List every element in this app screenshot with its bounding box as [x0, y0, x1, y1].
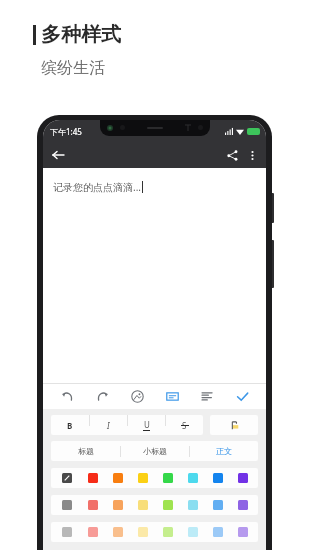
button[interactable]: Colour 2: [80, 522, 105, 542]
button[interactable]: U: [128, 415, 165, 435]
button[interactable]: Colour 1: [54, 468, 80, 488]
button[interactable]: Colour 2: [80, 468, 105, 488]
button[interactable]: Align: [190, 383, 225, 409]
button[interactable]: I: [90, 415, 127, 435]
button[interactable]: Colour 4: [130, 522, 155, 542]
staticText: 正文: [216, 446, 232, 456]
button[interactable]: S: [166, 415, 203, 435]
button[interactable]: Colour 8: [230, 495, 255, 515]
button[interactable]: Colour 3: [105, 522, 130, 542]
button[interactable]: Colour 4: [130, 468, 155, 488]
button[interactable]: Colour 3: [105, 468, 130, 488]
staticText: U: [144, 419, 150, 430]
button[interactable]: Colour 7: [205, 522, 230, 542]
button[interactable]: Colour 6: [180, 522, 205, 542]
staticText: 记录您的点点滴滴...: [53, 180, 142, 194]
staticText: S: [182, 420, 187, 431]
button[interactable]: Insert image: [120, 383, 155, 409]
button[interactable]: Colour 6: [180, 468, 205, 488]
staticText: 缤纷生活: [41, 58, 105, 78]
button[interactable]: Colour 8: [230, 522, 255, 542]
button[interactable]: Colour 7: [205, 468, 230, 488]
button[interactable]: Done: [225, 383, 260, 409]
button[interactable]: Text format: [155, 383, 190, 409]
button[interactable]: Colour 7: [205, 495, 230, 515]
staticText: 标题: [78, 446, 94, 456]
button[interactable]: Colour 8: [230, 468, 255, 488]
button[interactable]: 标题: [51, 441, 120, 461]
button[interactable]: Colour 5: [155, 468, 180, 488]
button[interactable]: Colour 4: [130, 495, 155, 515]
staticText: 小标题: [143, 446, 167, 456]
button[interactable]: Colour 2: [80, 495, 105, 515]
staticText: 下午1:45: [50, 126, 82, 137]
button[interactable]: 正文: [190, 441, 258, 461]
button[interactable]: Colour 3: [105, 495, 130, 515]
button[interactable]: Share: [222, 145, 242, 165]
button[interactable]: Colour 5: [155, 522, 180, 542]
button[interactable]: Colour 5: [155, 495, 180, 515]
button[interactable]: Colour 1: [54, 522, 80, 542]
button[interactable]: Highlighter: [210, 415, 258, 435]
button[interactable]: Colour 1: [54, 495, 80, 515]
button[interactable]: More options: [242, 145, 262, 165]
staticText: 多种样式: [41, 22, 121, 47]
button[interactable]: Back: [48, 145, 68, 165]
button[interactable]: Redo: [85, 383, 120, 409]
staticText: B: [67, 420, 73, 431]
button[interactable]: 小标题: [121, 441, 189, 461]
staticText: I: [107, 420, 110, 431]
button[interactable]: B: [51, 415, 89, 435]
button[interactable]: Colour 6: [180, 495, 205, 515]
button[interactable]: Undo: [49, 383, 85, 409]
